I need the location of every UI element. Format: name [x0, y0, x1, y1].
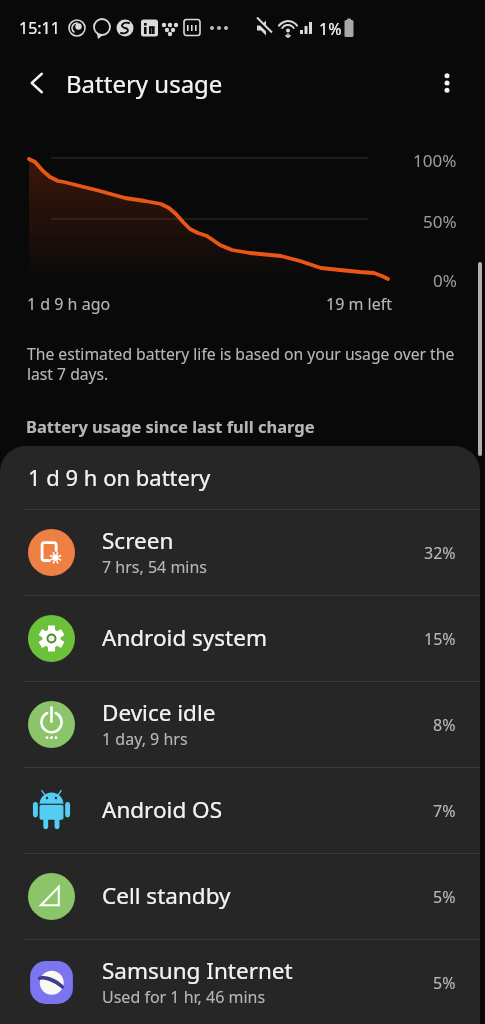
- staticText: Samsung Internet: [102, 955, 293, 986]
- staticText: Battery usage since last full charge: [26, 415, 315, 437]
- staticText: 7 hrs, 54 mins: [102, 556, 208, 578]
- staticText: 15:11: [19, 17, 60, 39]
- button[interactable]: Android system: [0, 596, 480, 681]
- staticText: 8%: [433, 714, 456, 736]
- staticText: 15%: [424, 628, 456, 650]
- button[interactable]: Screen: [0, 510, 480, 595]
- button[interactable]: Android OS: [0, 768, 480, 853]
- staticText: 7%: [433, 800, 456, 822]
- staticText: 19 m left: [326, 293, 393, 315]
- staticText: 5%: [433, 972, 456, 994]
- button[interactable]: Back: [16, 62, 58, 104]
- staticText: 0%: [433, 269, 457, 292]
- staticText: Used for 1 hr, 46 mins: [102, 986, 266, 1008]
- button[interactable]: Cell standby: [0, 854, 480, 939]
- staticText: 5%: [433, 886, 456, 908]
- staticText: 32%: [424, 542, 456, 564]
- staticText: Screen: [102, 525, 174, 556]
- staticText: 1 d 9 h on battery: [28, 462, 211, 492]
- staticText: Device idle: [102, 697, 216, 728]
- staticText: Android system: [102, 622, 267, 653]
- staticText: Android OS: [102, 794, 222, 825]
- staticText: 50%: [423, 210, 457, 233]
- staticText: 1 day, 9 hrs: [102, 728, 188, 750]
- staticText: 1%: [319, 18, 342, 40]
- staticText: 100%: [413, 149, 457, 172]
- button[interactable]: Samsung Internet: [0, 940, 480, 1024]
- staticText: Cell standby: [102, 880, 231, 911]
- staticText: Battery usage: [66, 67, 223, 100]
- staticText: The estimated battery life is based on y…: [27, 343, 455, 384]
- staticText: 1 d 9 h ago: [27, 293, 111, 315]
- button[interactable]: Device idle: [0, 682, 480, 767]
- button[interactable]: More options: [426, 62, 468, 104]
